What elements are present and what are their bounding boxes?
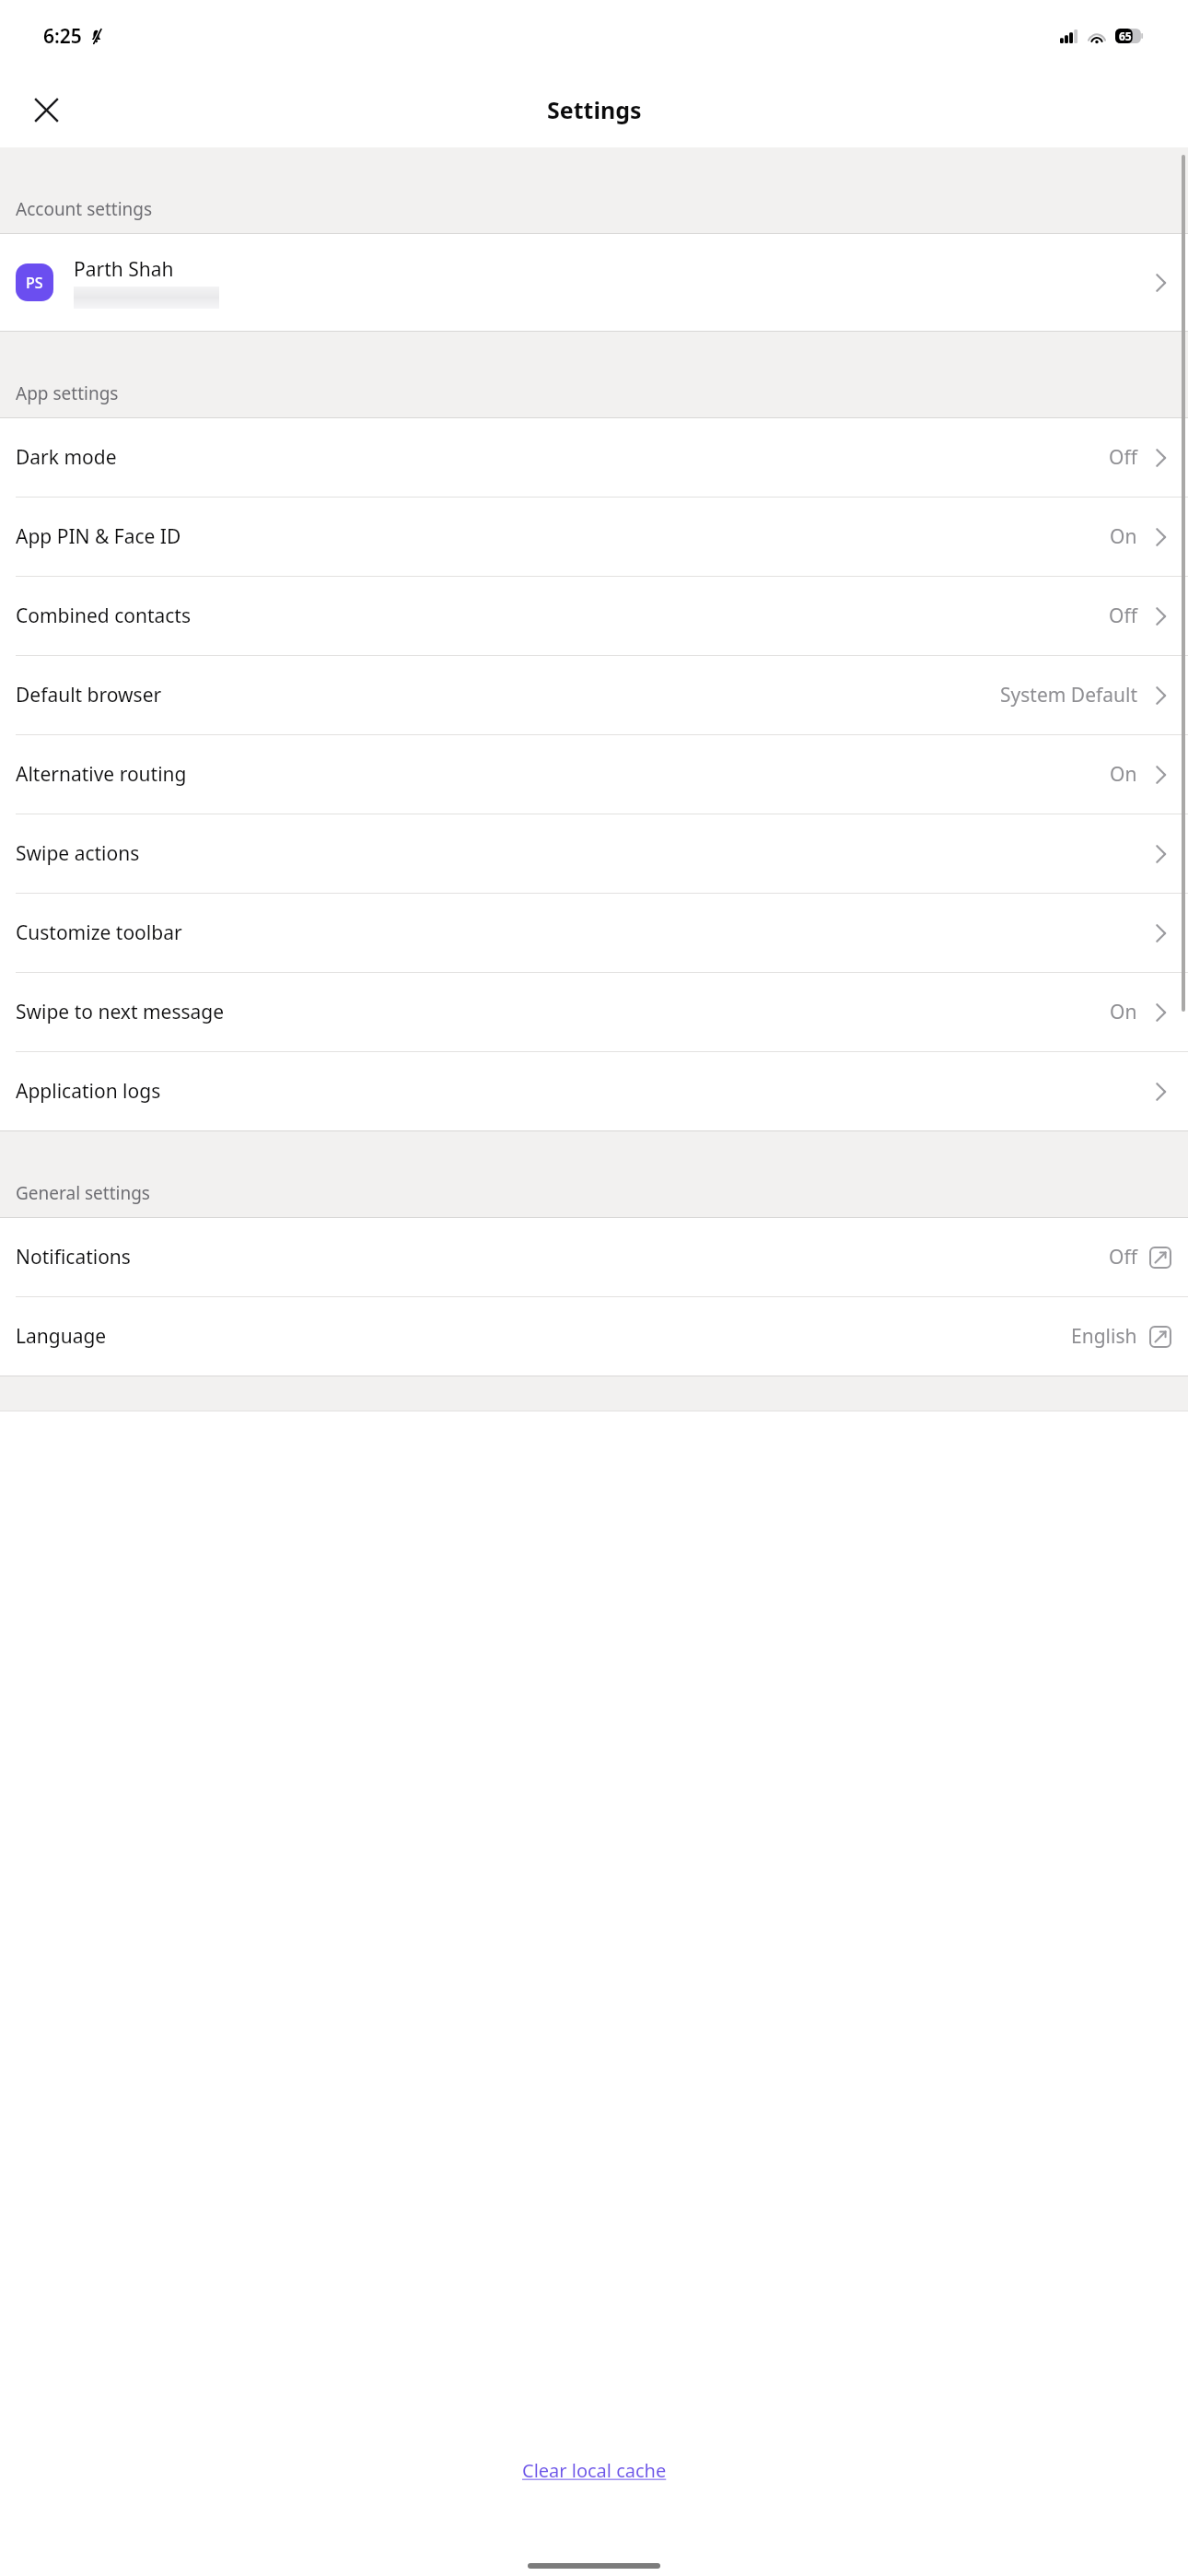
button[interactable]: Default browser (0, 656, 1188, 734)
staticText: Notifications (16, 1244, 131, 1270)
button[interactable]: Close (22, 86, 70, 134)
staticText: PS (26, 273, 43, 293)
staticText: Settings (547, 94, 642, 125)
staticText: Language (16, 1323, 107, 1350)
staticText: Dark mode (16, 444, 117, 471)
staticText: 65 (1119, 29, 1132, 43)
button[interactable]: Alternative routing (0, 735, 1188, 814)
button[interactable]: Notifications (0, 1218, 1188, 1296)
button[interactable]: Application logs (0, 1052, 1188, 1130)
staticText: System Default (1000, 682, 1137, 708)
staticText: On (1110, 761, 1137, 788)
button[interactable]: Clear local cache (513, 2454, 676, 2487)
staticText: On (1110, 999, 1137, 1025)
staticText: Application logs (16, 1078, 161, 1105)
staticText: App settings (16, 381, 119, 405)
staticText: Account settings (16, 197, 153, 221)
staticText: Off (1109, 444, 1137, 471)
staticText: Swipe actions (16, 840, 140, 867)
button[interactable]: Combined contacts (0, 577, 1188, 655)
staticText: English (1071, 1323, 1137, 1350)
button[interactable]: App PIN & Face ID (0, 498, 1188, 576)
staticText: 6:25 (43, 23, 82, 50)
staticText: Combined contacts (16, 603, 191, 629)
staticText: On (1110, 523, 1137, 550)
button[interactable]: Customize toolbar (0, 894, 1188, 972)
staticText: Off (1109, 1244, 1137, 1270)
button[interactable]: Language (0, 1297, 1188, 1376)
staticText: Off (1109, 603, 1137, 629)
staticText: Customize toolbar (16, 919, 182, 946)
staticText: Clear local cache (522, 2458, 667, 2483)
staticText: General settings (16, 1181, 150, 1205)
staticText: Alternative routing (16, 761, 187, 788)
button[interactable]: Swipe to next message (0, 973, 1188, 1051)
staticText: App PIN & Face ID (16, 523, 181, 550)
button[interactable]: PS (0, 234, 1188, 331)
button[interactable]: Dark mode (0, 418, 1188, 497)
staticText: Parth Shah (74, 256, 174, 283)
button[interactable]: Swipe actions (0, 814, 1188, 893)
staticText: Swipe to next message (16, 999, 225, 1025)
staticText: Default browser (16, 682, 162, 708)
